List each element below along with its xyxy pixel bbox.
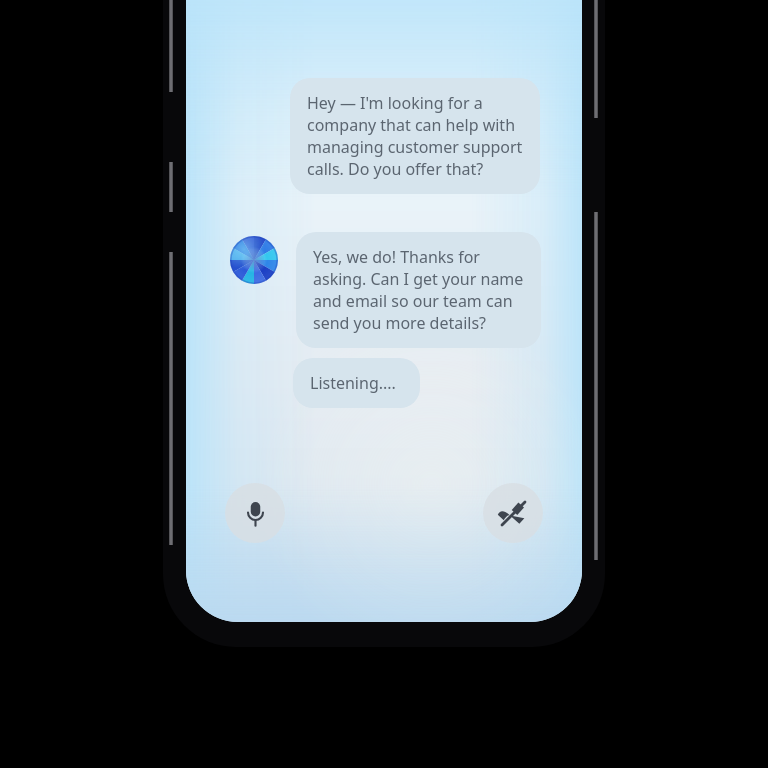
button[interactable]: Microphone — [225, 483, 285, 543]
staticText: Hey — I'm looking for a company that can… — [307, 92, 523, 180]
staticText: Yes, we do! Thanks for asking. Can I get… — [313, 246, 524, 334]
button[interactable]: Listening.... — [293, 358, 420, 408]
button[interactable]: End call — [483, 483, 543, 543]
button[interactable]: Hey — I'm looking for a company that can… — [290, 78, 540, 194]
button[interactable]: Yes, we do! Thanks for asking. Can I get… — [296, 232, 541, 348]
other: Assistant avatar — [230, 236, 278, 284]
staticText: Listening.... — [310, 372, 396, 394]
